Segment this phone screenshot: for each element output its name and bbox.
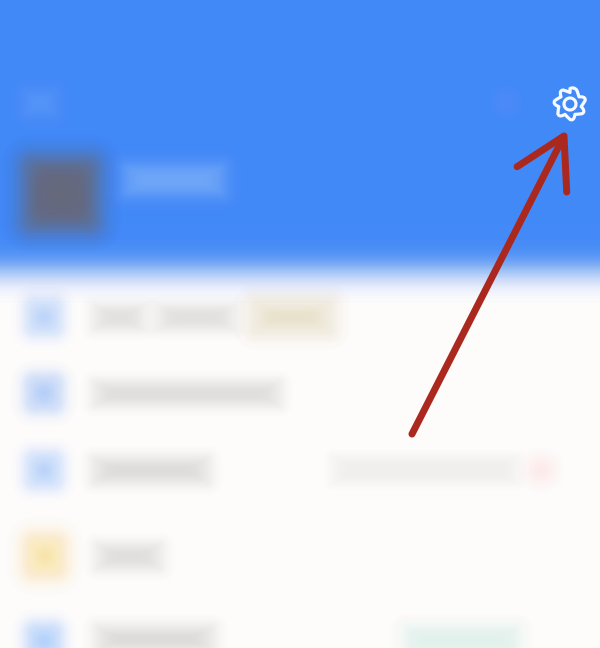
button[interactable]: Settings	[546, 80, 594, 128]
